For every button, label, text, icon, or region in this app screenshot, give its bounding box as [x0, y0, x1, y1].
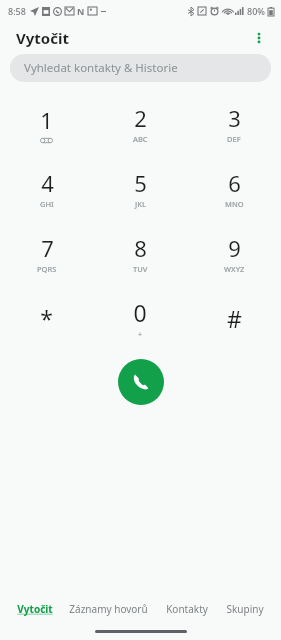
staticText: WXYZ — [224, 264, 245, 274]
button[interactable]: 9 — [187, 221, 281, 286]
staticText: GHI — [40, 199, 54, 209]
button[interactable]: 0 — [93, 286, 187, 351]
button[interactable]: Záznamy hovorů — [61, 596, 156, 622]
staticText: TUV — [133, 264, 148, 274]
staticText: 3 — [228, 103, 241, 133]
button[interactable]: Vyhledat kontakty & Historie — [10, 54, 271, 82]
button[interactable]: Call — [118, 359, 164, 405]
button[interactable]: 7 — [0, 221, 93, 286]
staticText: 80% — [247, 5, 265, 17]
staticText: Vytočit — [17, 602, 53, 616]
staticText: + — [138, 330, 143, 340]
staticText: N — [77, 5, 85, 17]
staticText: ABC — [133, 134, 148, 144]
button[interactable]: Skupiny — [217, 596, 273, 622]
button[interactable]: * — [0, 286, 93, 351]
staticText: 9 — [228, 233, 241, 263]
staticText: MNO — [225, 199, 244, 209]
staticText: Vyhledat kontakty & Historie — [24, 60, 178, 76]
button[interactable]: Kontakty — [156, 596, 217, 622]
staticText: DEF — [227, 134, 241, 144]
staticText: 0 — [133, 297, 147, 328]
staticText: * — [40, 303, 53, 334]
staticText: 7 — [41, 233, 54, 263]
button[interactable]: Vytočit — [8, 596, 61, 622]
staticText: 8 — [134, 233, 147, 263]
button[interactable]: More options — [243, 22, 275, 54]
button[interactable]: 4 — [0, 156, 93, 221]
button[interactable]: # — [187, 286, 281, 351]
button[interactable]: 2 — [93, 91, 187, 156]
staticText: 4 — [41, 168, 54, 198]
staticText: 5 — [134, 168, 147, 198]
button[interactable]: 6 — [187, 156, 281, 221]
staticText: Záznamy hovorů — [69, 602, 148, 616]
staticText: 1 — [40, 105, 53, 135]
staticText: 2 — [134, 103, 147, 133]
staticText: PQRS — [37, 264, 57, 274]
staticText: 6 — [228, 168, 241, 198]
staticText: # — [227, 303, 242, 334]
button[interactable]: 3 — [187, 91, 281, 156]
staticText: Vytočit — [16, 28, 69, 48]
button[interactable]: 5 — [93, 156, 187, 221]
staticText: JKL — [135, 199, 146, 209]
staticText: Kontakty — [166, 602, 208, 616]
staticText: 8:58 — [8, 5, 26, 17]
staticText: Skupiny — [226, 602, 264, 616]
button[interactable]: 8 — [93, 221, 187, 286]
button[interactable]: 1 — [0, 91, 93, 156]
